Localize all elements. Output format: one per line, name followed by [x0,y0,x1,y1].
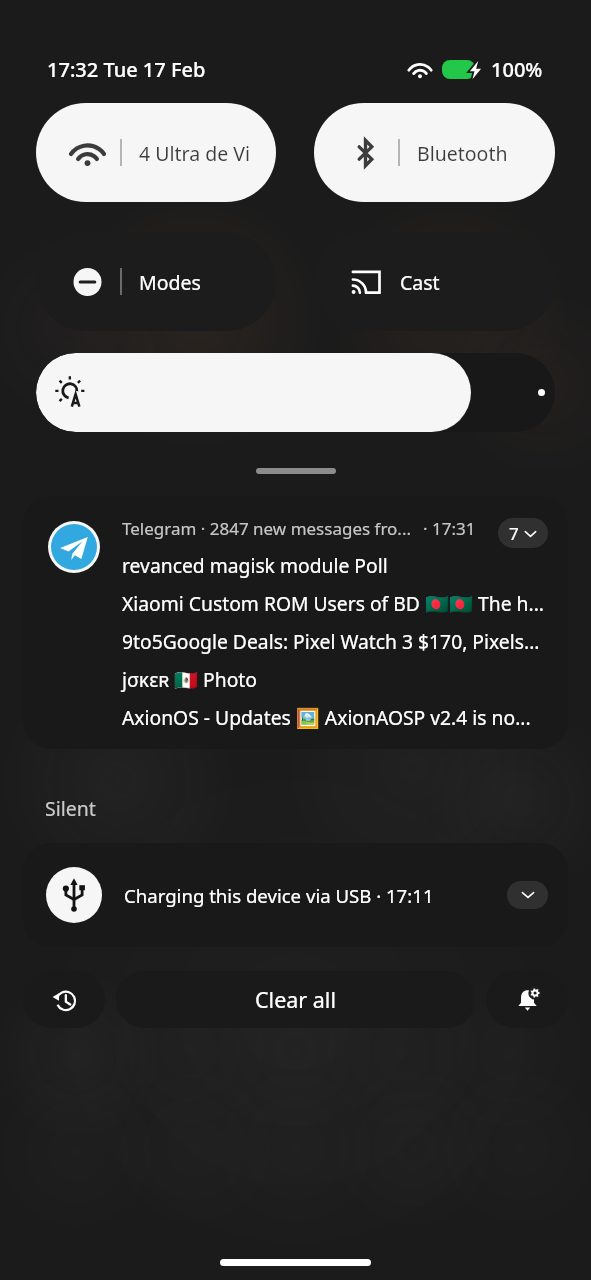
button[interactable]: Expand notification group [498,518,548,548]
button[interactable]: Modes [36,232,276,331]
staticText: Xiaomi Custom ROM Users of BD 🇧🇩🇧🇩 The h… [122,590,544,616]
staticText: 9to5Google Deals: Pixel Watch 3 $170, Pi… [122,628,540,654]
staticText: revanced magisk module Poll [122,552,388,578]
staticText: Modes [139,269,201,296]
staticText: Telegram · 2847 new messages fro... [122,517,412,540]
button[interactable]: Expand [507,881,548,909]
button[interactable]: Clear all [116,971,475,1028]
button[interactable]: History [23,971,105,1028]
button[interactable]: Notification settings [486,971,568,1028]
staticText: Bluetooth [417,140,508,167]
staticText: 4 Ultra de Vi [139,140,251,167]
staticText: Charging this device via USB · 17:11 [124,883,434,908]
staticText: · 17:31 [423,517,476,540]
staticText: Silent [45,795,96,822]
button[interactable]: Brightness [36,353,555,432]
staticText: jσκεʀ 🇲🇽 Photo [122,666,257,692]
button[interactable]: Cast [314,232,555,331]
staticText: Clear all [255,985,336,1014]
staticText: Cast [400,269,440,296]
staticText: AxionOS - Updates 🖼️ AxionAOSP v2.4 is n… [122,704,531,730]
button[interactable]: Bluetooth [314,103,555,202]
button[interactable]: 4 Ultra de Vi [36,103,276,202]
staticText: 7 [509,522,519,545]
button[interactable]: Charging this device via USB · 17:11 [23,843,568,947]
staticText: 100% [491,56,543,82]
staticText: 17:32 Tue 17 Feb [47,56,206,82]
button[interactable]: Telegram · 2847 new messages fro... [23,496,568,749]
